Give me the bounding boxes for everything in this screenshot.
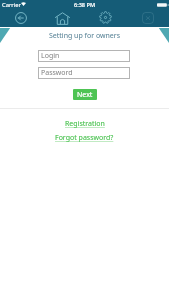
button[interactable]: Settings [99, 11, 112, 24]
button[interactable]: Login [38, 50, 130, 62]
staticText: Carrier [2, 1, 21, 9]
button[interactable]: Account [142, 12, 154, 24]
staticText: Password [41, 68, 73, 78]
button[interactable]: Forgot password? [55, 133, 114, 143]
staticText: Login [41, 51, 60, 61]
button[interactable]: Registration [65, 119, 105, 129]
button[interactable]: Back [15, 12, 27, 24]
staticText: Setting up for owners [0, 31, 169, 41]
staticText: Registration [65, 119, 105, 129]
button[interactable]: Home [55, 12, 70, 25]
staticText: 6:38 PM [0, 1, 169, 9]
button[interactable]: Password [38, 67, 130, 79]
staticText: Forgot password? [55, 133, 114, 143]
staticText: Next [77, 90, 93, 100]
button[interactable]: Next [73, 89, 97, 100]
